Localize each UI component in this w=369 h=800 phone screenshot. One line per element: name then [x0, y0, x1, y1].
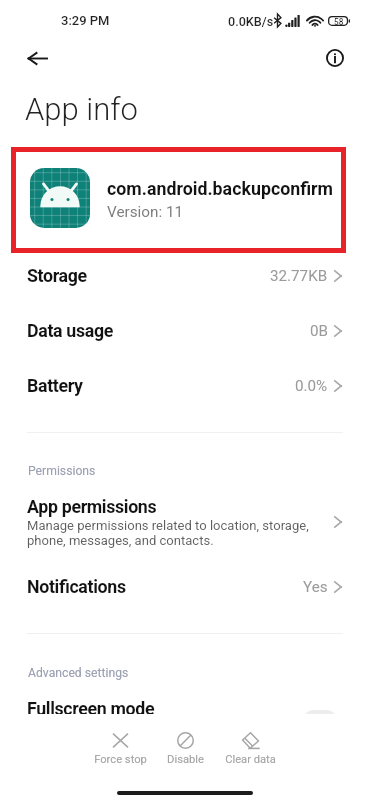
staticText: Disable	[167, 753, 204, 766]
staticText: Force stop	[94, 753, 147, 766]
staticText: Permissions	[28, 464, 96, 478]
button[interactable]: App details	[321, 44, 349, 72]
button[interactable]: Force stop	[89, 724, 151, 774]
button[interactable]: Battery	[0, 358, 369, 413]
staticText: Storage	[27, 265, 87, 286]
staticText: 3:29 PM	[61, 13, 110, 28]
button[interactable]: Notifications	[0, 559, 369, 614]
staticText: 58	[334, 17, 344, 27]
staticText: com.android.backupconfirm	[107, 178, 333, 199]
staticText: Advanced settings	[28, 666, 129, 680]
button[interactable]: Data usage	[0, 303, 369, 358]
staticText: 32.77KB	[270, 267, 328, 285]
button[interactable]: Storage	[0, 248, 369, 303]
staticText: Notifications	[27, 576, 126, 597]
staticText: App info	[25, 91, 138, 127]
staticText: Battery	[27, 375, 83, 396]
staticText: Fullscreen mode	[27, 698, 155, 719]
button[interactable]: App permissions	[0, 486, 369, 556]
staticText: App permissions	[27, 496, 157, 517]
staticText: 0.0KB/s	[228, 14, 274, 29]
button[interactable]: com.android.backupconfirm	[16, 152, 341, 248]
button[interactable]: Disable	[154, 724, 216, 774]
staticText: Data usage	[27, 320, 113, 341]
staticText: Clear data	[225, 753, 276, 766]
staticText: 0B	[310, 322, 328, 340]
staticText: Version: 11	[107, 203, 184, 221]
staticText: 0.0%	[295, 377, 328, 395]
staticText: Yes	[303, 578, 328, 596]
button[interactable]: Fullscreen mode	[0, 687, 369, 727]
staticText: Manage permissions related to location, …	[27, 518, 309, 548]
button[interactable]: Clear data	[219, 724, 281, 774]
button[interactable]: Back	[23, 44, 51, 72]
